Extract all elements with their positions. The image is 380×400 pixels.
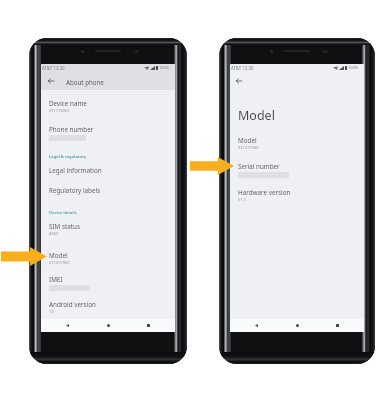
button[interactable]: SIM status (41, 221, 175, 243)
staticText: About phone (66, 78, 104, 86)
staticText: Android version (49, 300, 96, 309)
staticText: Phone number (49, 125, 94, 134)
staticText: XT1477960 (238, 145, 259, 150)
staticText: IMEI (49, 275, 63, 284)
staticText: AT&T 12:30 (231, 65, 254, 71)
staticText: AT&T (49, 231, 59, 236)
button[interactable]: Legal information (41, 165, 175, 183)
staticText: Legal information (49, 166, 102, 175)
button[interactable]: Recent apps (332, 320, 343, 331)
button[interactable]: Navigate up (45, 75, 57, 87)
staticText: Legal & regulatory (49, 154, 87, 160)
staticText: 10 (49, 309, 54, 314)
staticText: XT1776962 (49, 108, 70, 113)
staticText: Model (49, 251, 68, 260)
button[interactable]: Recent apps (143, 320, 154, 331)
other: Step indicator (190, 157, 234, 175)
button[interactable]: Device name (41, 98, 175, 120)
button[interactable]: Home (292, 320, 303, 331)
staticText: Serial number (238, 162, 280, 171)
staticText: V1.1 (238, 197, 247, 202)
staticText: AT&T 12:30 (42, 65, 65, 71)
staticText: Hardware version (238, 188, 291, 197)
button[interactable]: Phone number (41, 124, 175, 146)
button[interactable]: Model (230, 135, 364, 157)
button[interactable]: Back (251, 320, 262, 331)
staticText: Model (238, 107, 275, 124)
button[interactable]: Home (103, 320, 114, 331)
button[interactable]: Model (41, 250, 175, 272)
staticText: 100% (348, 65, 359, 70)
staticText: Regulatory labels (49, 186, 101, 195)
button[interactable]: Android version (41, 299, 175, 321)
staticText: XT1477960 (49, 260, 70, 265)
staticText: Model (238, 136, 257, 145)
other: Step indicator (1, 247, 47, 266)
button[interactable]: Regulatory labels (41, 185, 175, 203)
staticText: 100% (159, 65, 170, 70)
staticText: Device details (49, 210, 77, 216)
button[interactable]: Hardware version (230, 187, 364, 209)
button[interactable]: Navigate up (233, 75, 245, 87)
staticText: SIM status (49, 222, 80, 231)
button[interactable]: IMEI (41, 274, 175, 296)
button[interactable]: Back (62, 320, 73, 331)
staticText: Device name (49, 99, 87, 108)
button[interactable]: Serial number (230, 161, 364, 183)
